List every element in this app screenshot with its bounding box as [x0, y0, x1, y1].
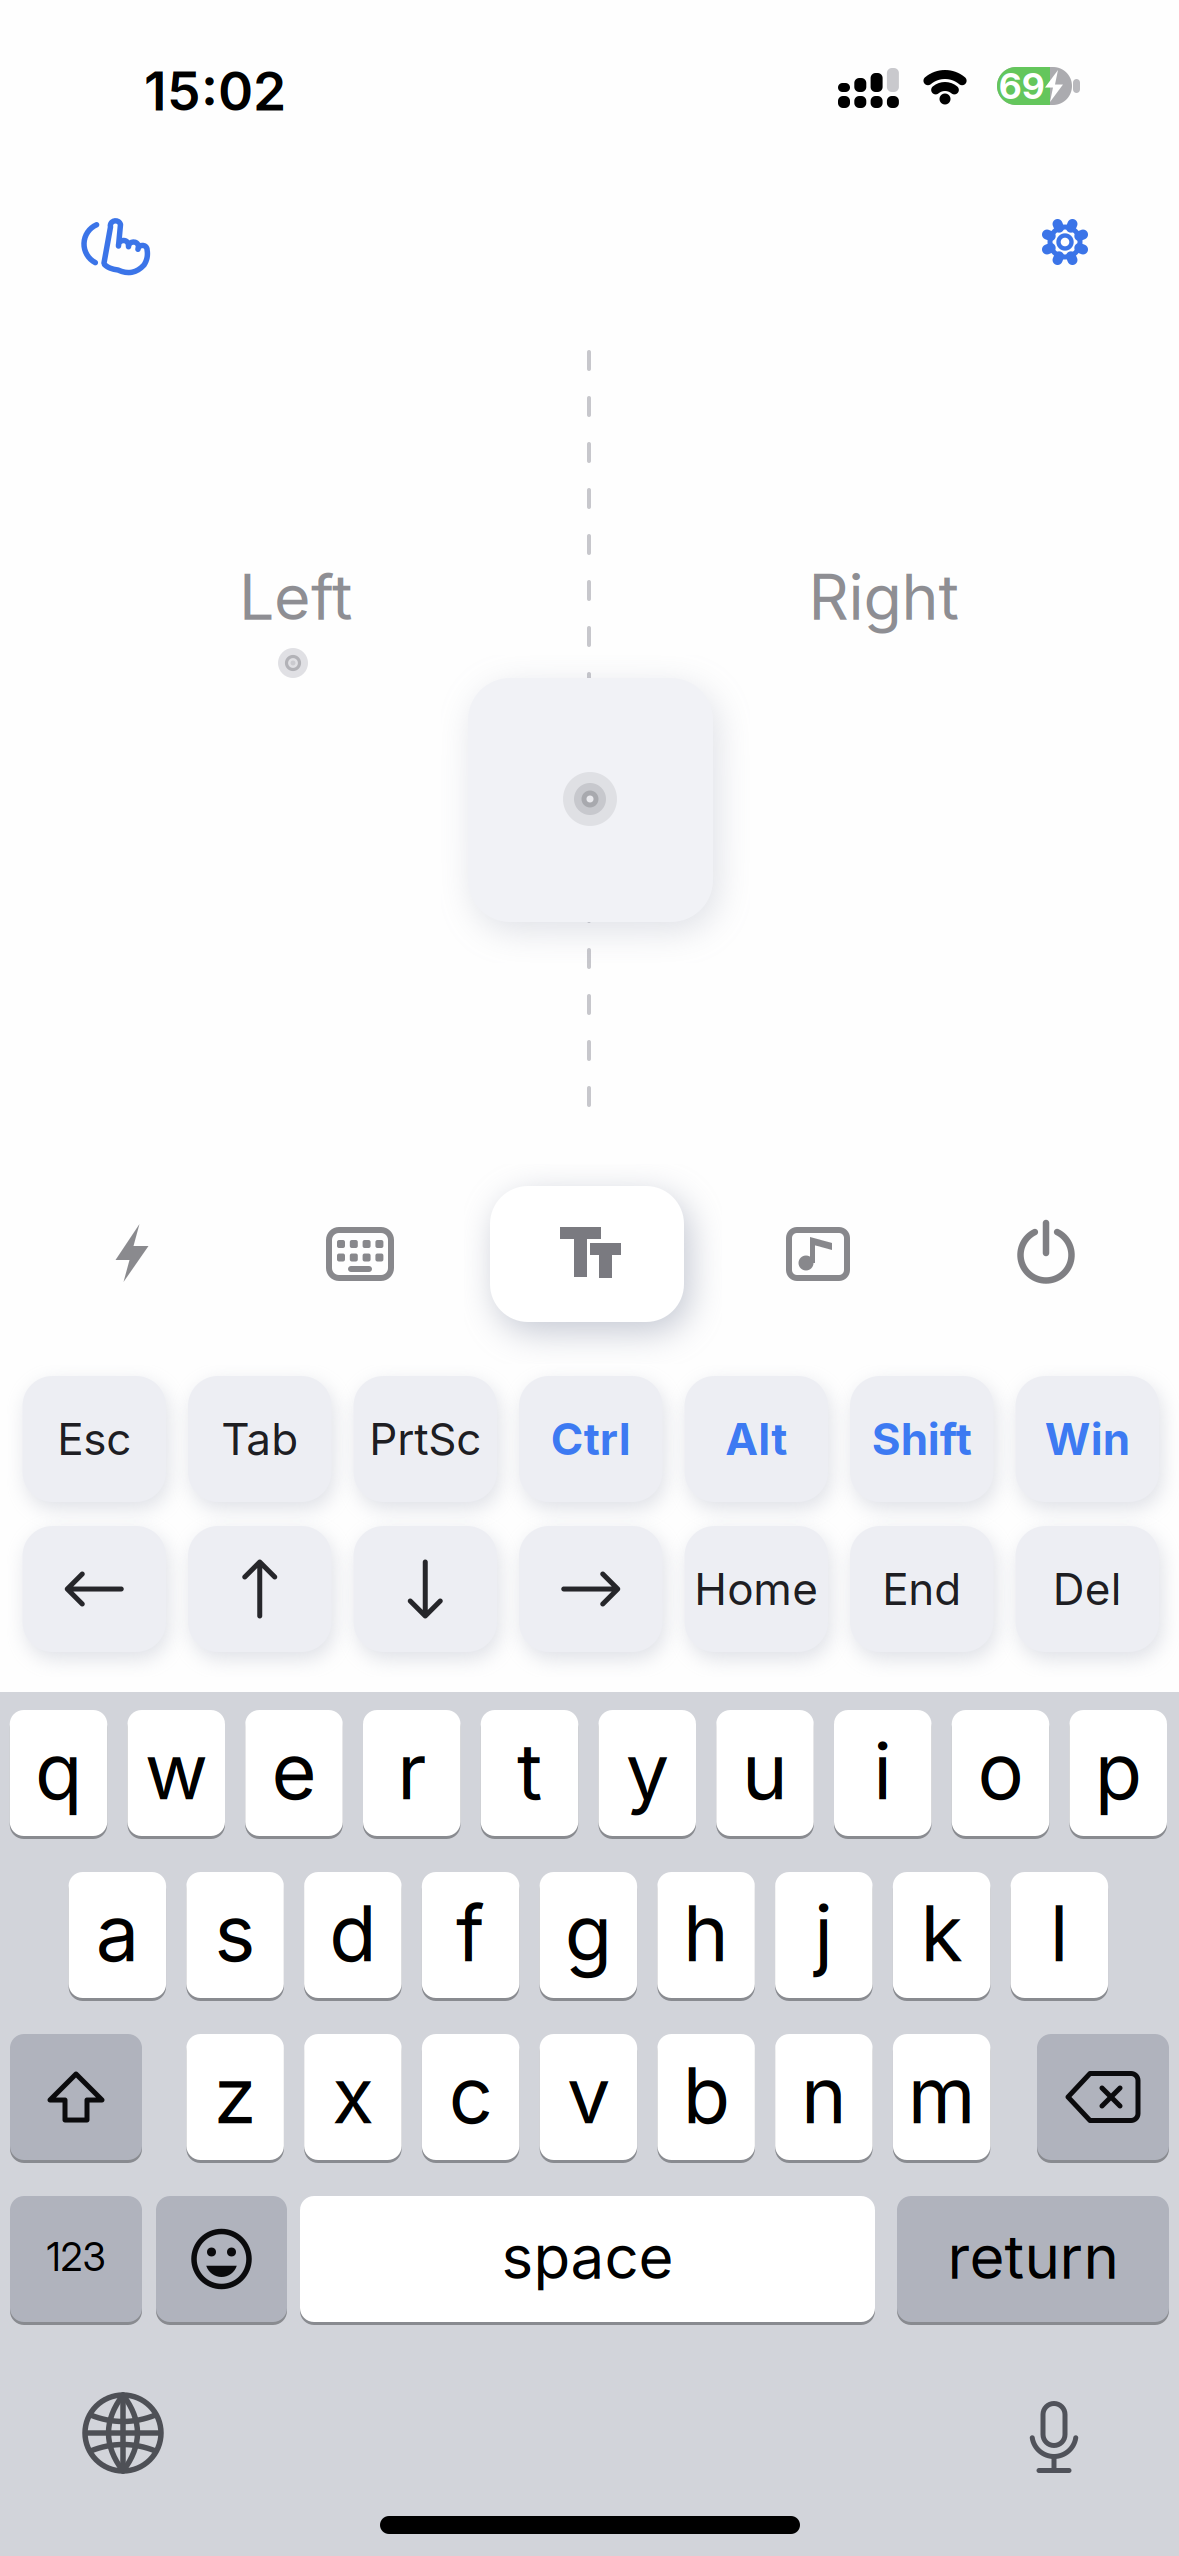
staticText: x	[332, 2049, 374, 2141]
staticText: n	[801, 2049, 847, 2141]
staticText: u	[742, 1725, 788, 1817]
staticText: t	[517, 1725, 542, 1817]
staticText: h	[683, 1887, 729, 1979]
staticText: s	[215, 1887, 256, 1979]
staticText: k	[921, 1887, 963, 1979]
staticText: return	[947, 2222, 1118, 2292]
staticText: space	[501, 2222, 673, 2292]
staticText: 69	[999, 65, 1045, 107]
staticText: c	[449, 2049, 493, 2141]
staticText: o	[977, 1725, 1023, 1817]
staticText: Alt	[725, 1413, 787, 1465]
staticText: Ctrl	[551, 1413, 631, 1465]
staticText: Right	[808, 560, 959, 634]
staticText: q	[35, 1725, 82, 1817]
staticText: i	[873, 1725, 892, 1817]
staticText: y	[626, 1725, 669, 1817]
staticText: Tab	[221, 1413, 298, 1465]
staticText: a	[96, 1887, 139, 1979]
staticText: Left	[239, 560, 353, 634]
staticText: Esc	[57, 1413, 131, 1465]
staticText: v	[567, 2049, 610, 2141]
staticText: b	[683, 2049, 730, 2141]
staticText: g	[565, 1887, 612, 1979]
staticText: d	[329, 1887, 376, 1979]
staticText: 123	[46, 2234, 105, 2280]
staticText: Home	[694, 1563, 818, 1615]
staticText: 15:02	[144, 59, 286, 122]
staticText: Win	[1045, 1413, 1130, 1465]
staticText: PrtSc	[369, 1413, 481, 1465]
staticText: l	[1050, 1887, 1069, 1979]
staticText: m	[908, 2049, 976, 2141]
staticText: f	[456, 1887, 485, 1979]
staticText: Del	[1053, 1563, 1122, 1615]
staticText: Shift	[872, 1413, 972, 1465]
staticText: z	[214, 2049, 257, 2141]
staticText: p	[1095, 1725, 1142, 1817]
staticText: e	[271, 1725, 316, 1817]
staticText: w	[145, 1725, 208, 1817]
staticText: r	[397, 1725, 426, 1817]
staticText: End	[882, 1563, 961, 1615]
staticText: j	[814, 1887, 833, 1979]
